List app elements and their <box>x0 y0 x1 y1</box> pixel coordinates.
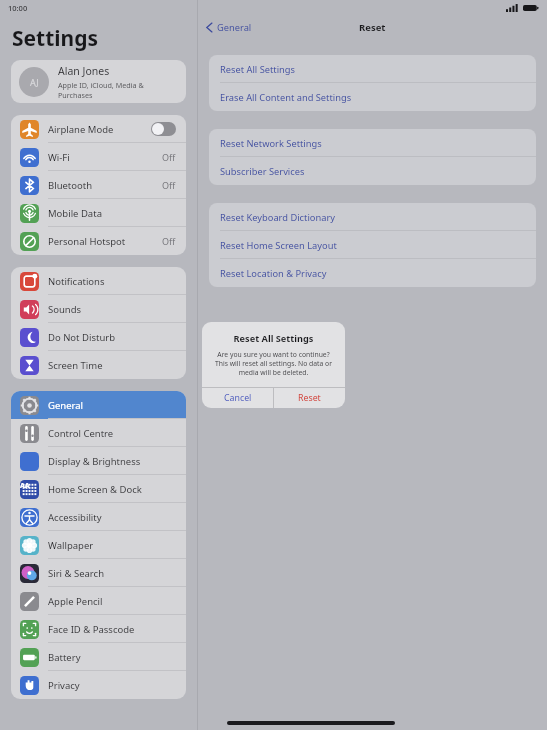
staticText: AA <box>20 481 30 491</box>
staticText: 10:00 <box>8 3 28 13</box>
staticText: Settings <box>12 24 99 53</box>
staticText: Personal Hotspot <box>48 235 162 248</box>
button[interactable]: Reset Network Settings <box>209 129 536 157</box>
button[interactable]: Reset Keyboard Dictionary <box>209 203 536 231</box>
staticText: Face ID & Passcode <box>48 623 176 636</box>
button[interactable]: Cancel <box>202 388 273 408</box>
staticText: General <box>48 399 176 412</box>
button[interactable]: Screen Time <box>11 351 186 379</box>
staticText: AJ <box>30 76 39 88</box>
staticText: Privacy <box>48 679 176 692</box>
staticText: Reset <box>298 392 321 404</box>
button[interactable]: Erase All Content and Settings <box>209 83 536 111</box>
staticText: Wallpaper <box>48 539 176 552</box>
staticText: Reset <box>359 21 386 34</box>
staticText: Home Screen & Dock <box>48 483 176 496</box>
button[interactable]: General <box>11 391 186 419</box>
staticText: Cancel <box>224 392 252 404</box>
button[interactable]: Privacy <box>11 671 186 699</box>
staticText: Reset Keyboard Dictionary <box>220 211 335 224</box>
button[interactable]: Subscriber Services <box>209 157 536 185</box>
staticText: Reset All Settings <box>202 332 345 345</box>
button[interactable]: Display & Brightness <box>11 447 186 475</box>
staticText: Subscriber Services <box>220 165 305 178</box>
button[interactable]: Notifications <box>11 267 186 295</box>
staticText: Off <box>162 235 176 247</box>
staticText: Airplane Mode <box>48 123 151 136</box>
staticText: Siri & Search <box>48 567 176 580</box>
staticText: Off <box>162 151 176 163</box>
staticText: Off <box>162 179 176 191</box>
staticText: Reset Home Screen Layout <box>220 239 337 252</box>
staticText: Reset Location & Privacy <box>220 267 327 280</box>
button[interactable]: Airplane Mode <box>11 115 186 143</box>
staticText: Control Centre <box>48 427 176 440</box>
staticText: Alan Jones <box>58 64 110 78</box>
button[interactable]: Battery <box>11 643 186 671</box>
staticText: Wi-Fi <box>48 151 162 164</box>
staticText: Are you sure you want to continue? This … <box>211 350 336 377</box>
button[interactable]: Home Screen & Dock <box>11 475 186 503</box>
button[interactable]: Wi-Fi <box>11 143 186 171</box>
button[interactable]: Personal Hotspot <box>11 227 186 255</box>
staticText: Sounds <box>48 303 176 316</box>
staticText: Screen Time <box>48 359 176 372</box>
staticText: Do Not Disturb <box>48 331 176 344</box>
staticText: General <box>217 21 252 34</box>
button[interactable]: Do Not Disturb <box>11 323 186 351</box>
staticText: Reset All Settings <box>220 63 296 76</box>
staticText: Display & Brightness <box>48 455 176 468</box>
staticText: Mobile Data <box>48 207 176 220</box>
button[interactable]: Control Centre <box>11 419 186 447</box>
staticText: Reset Network Settings <box>220 137 322 150</box>
staticText: Erase All Content and Settings <box>220 91 352 104</box>
button[interactable]: General <box>206 21 252 34</box>
button[interactable]: Reset <box>274 388 345 408</box>
staticText: Battery <box>48 651 176 664</box>
staticText: Apple Pencil <box>48 595 176 608</box>
button[interactable]: Reset Home Screen Layout <box>209 231 536 259</box>
button[interactable]: Bluetooth <box>11 171 186 199</box>
staticText: Apple ID, iCloud, Media & Purchases <box>58 80 178 100</box>
button[interactable]: Wallpaper <box>11 531 186 559</box>
button[interactable]: Face ID & Passcode <box>11 615 186 643</box>
button[interactable]: AJ <box>19 60 178 103</box>
button[interactable]: Apple Pencil <box>11 587 186 615</box>
button[interactable]: Reset All Settings <box>209 55 536 83</box>
button[interactable]: Sounds <box>11 295 186 323</box>
staticText: Bluetooth <box>48 179 162 192</box>
staticText: Accessibility <box>48 511 176 524</box>
button[interactable]: Reset Location & Privacy <box>209 259 536 287</box>
button[interactable]: Accessibility <box>11 503 186 531</box>
button[interactable]: Mobile Data <box>11 199 186 227</box>
staticText: Notifications <box>48 275 176 288</box>
button[interactable]: Siri & Search <box>11 559 186 587</box>
button[interactable]: Airplane Mode toggle <box>151 122 176 136</box>
